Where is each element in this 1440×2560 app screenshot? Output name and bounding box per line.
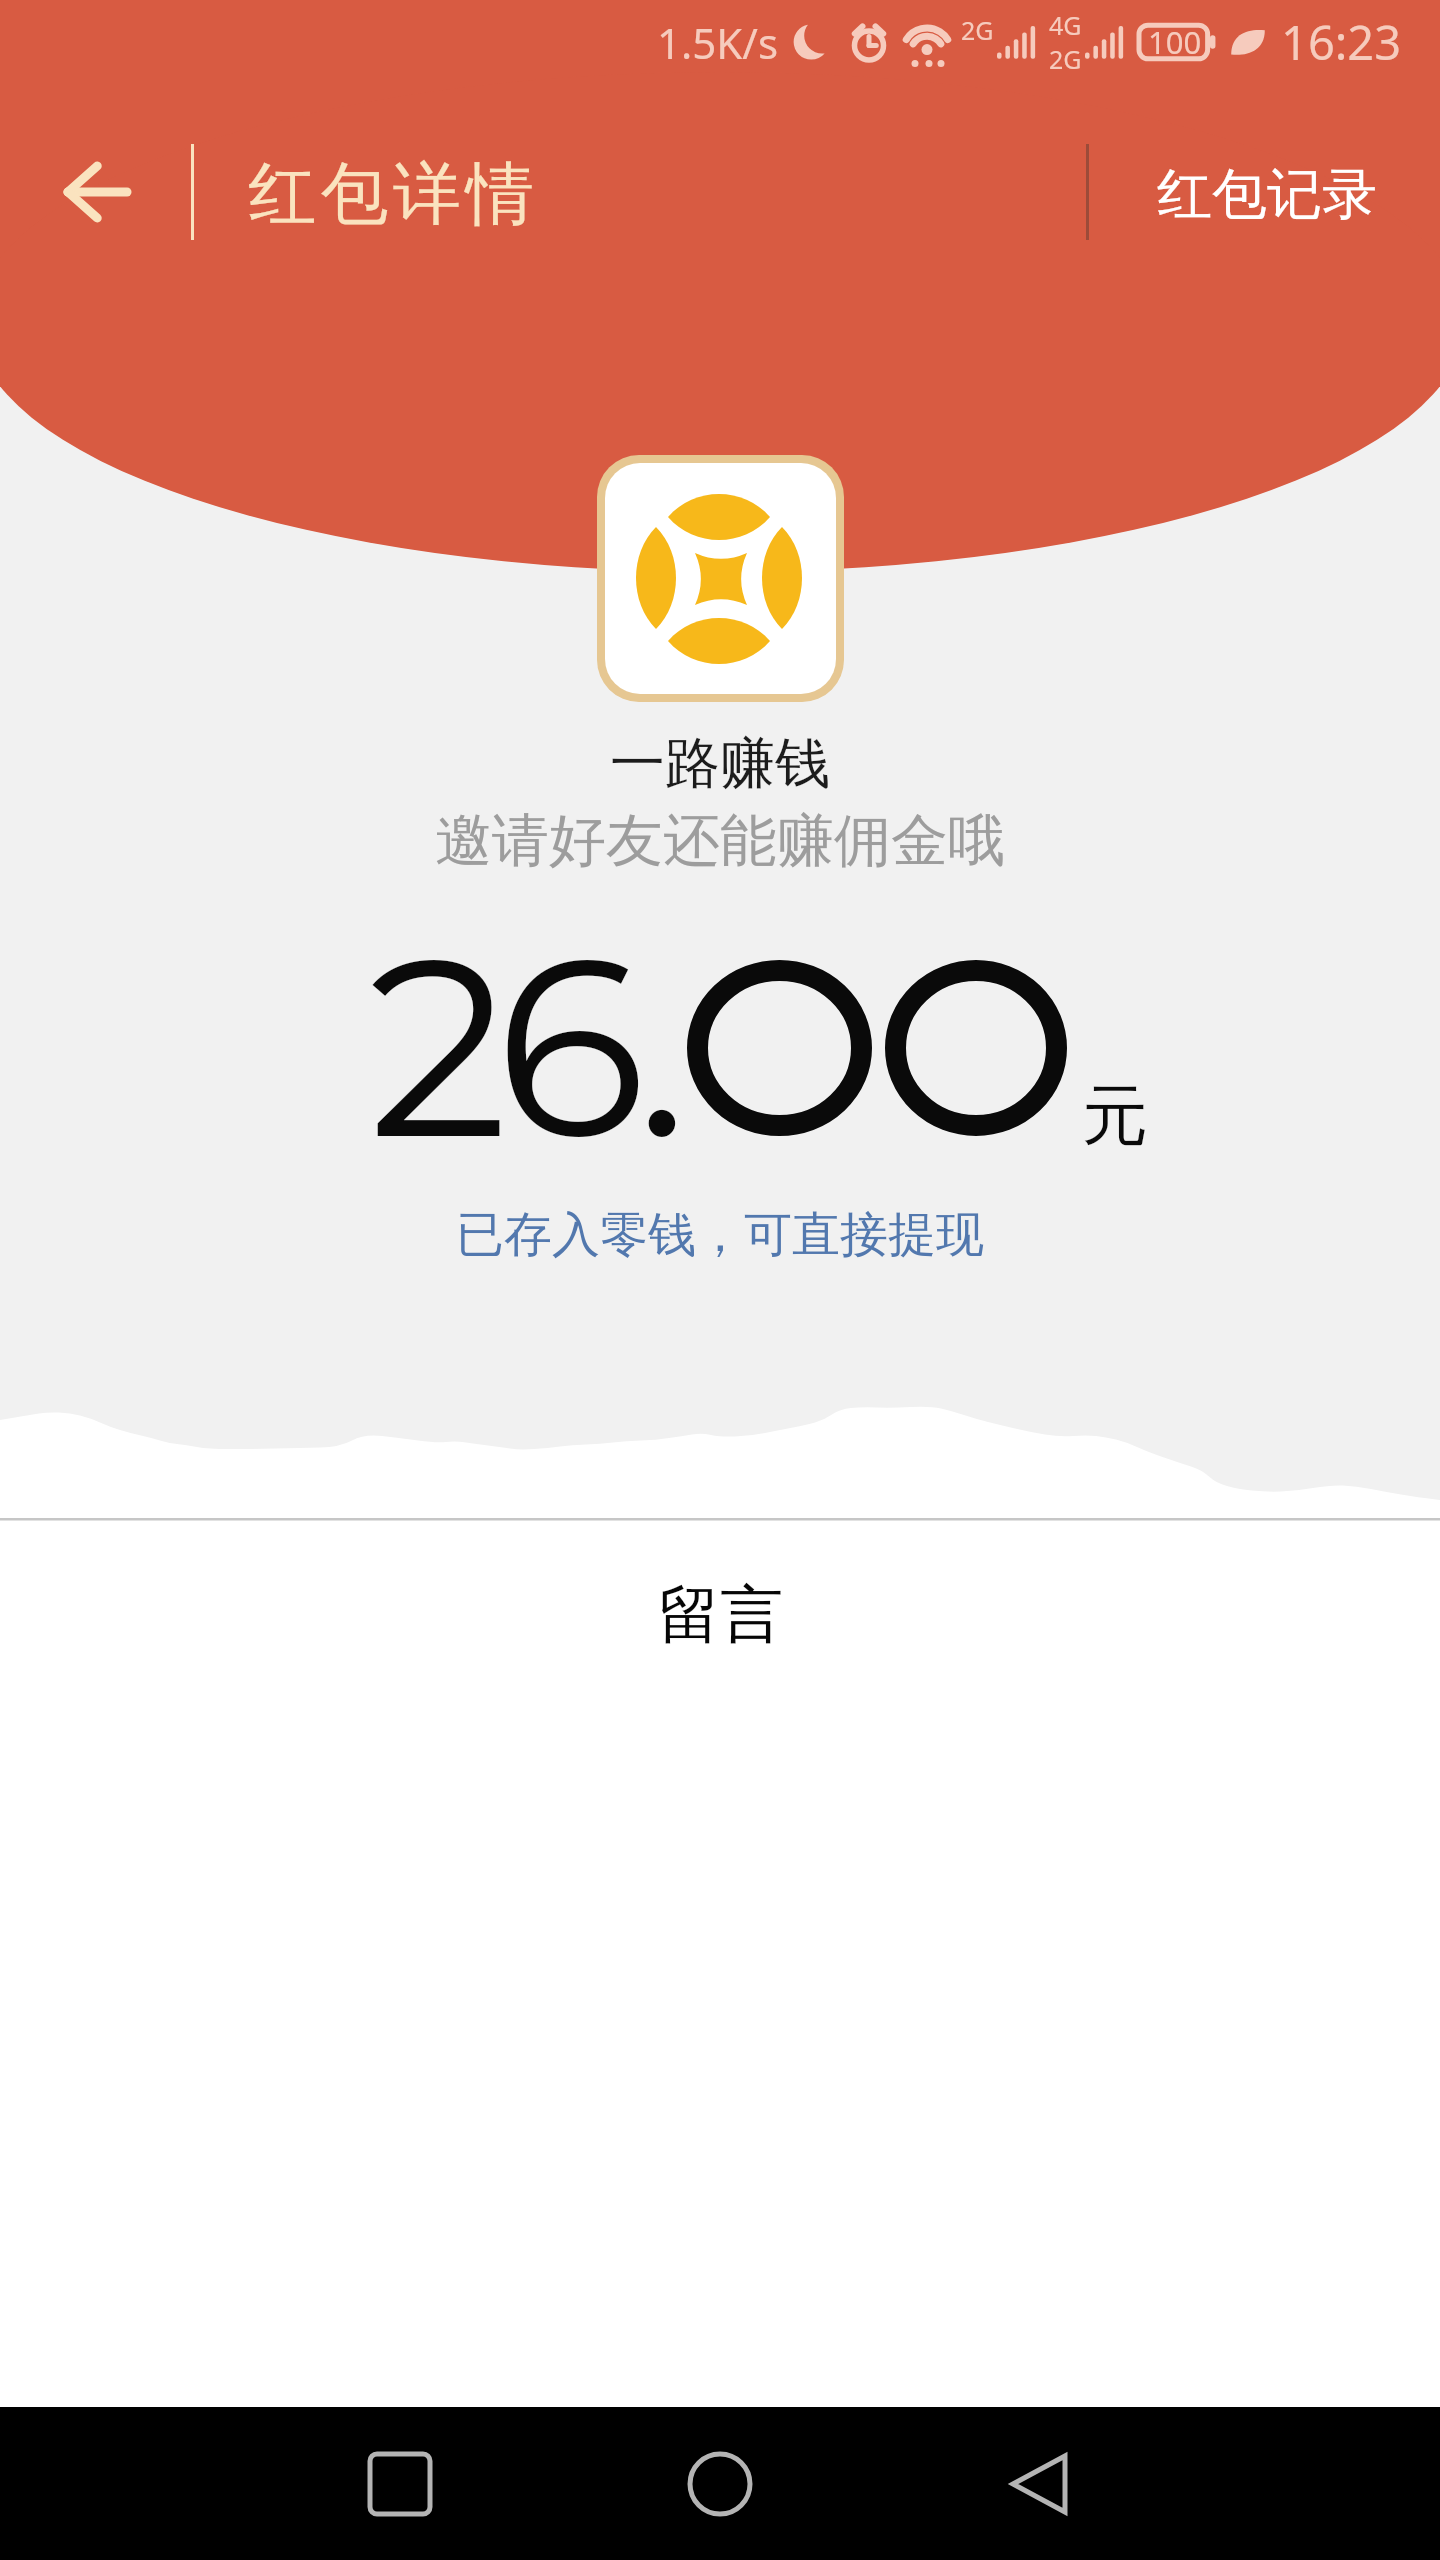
staticText: 26. (368, 896, 675, 1198)
staticText: 已存入零钱，可直接提现 (456, 1205, 984, 1265)
staticText: 一路赚钱 (610, 729, 830, 798)
button[interactable]: Back (30, 132, 162, 252)
staticText: 邀请好友还能赚佣金哦 (435, 805, 1005, 877)
staticText: 红包详情 (246, 152, 536, 238)
staticText: 16:23 (1281, 10, 1402, 74)
staticText: 红包记录 (1157, 160, 1377, 229)
staticText: 2G (961, 13, 994, 47)
staticText: 留言 (657, 1575, 783, 1654)
staticText: 1.5K/s (657, 14, 779, 71)
button[interactable]: 留言 (0, 1548, 1440, 1680)
button[interactable]: 一路赚钱 avatar (605, 463, 836, 694)
button[interactable]: 红包记录 (1157, 160, 1377, 229)
button[interactable]: Back (960, 2407, 1120, 2560)
staticText: 元 (1082, 1074, 1148, 1157)
staticText: 4G (1049, 8, 1082, 42)
staticText: 100 (1148, 21, 1202, 63)
button[interactable]: Home (640, 2407, 800, 2560)
staticText: 2G (1049, 42, 1082, 76)
button[interactable]: Recents (320, 2407, 480, 2560)
